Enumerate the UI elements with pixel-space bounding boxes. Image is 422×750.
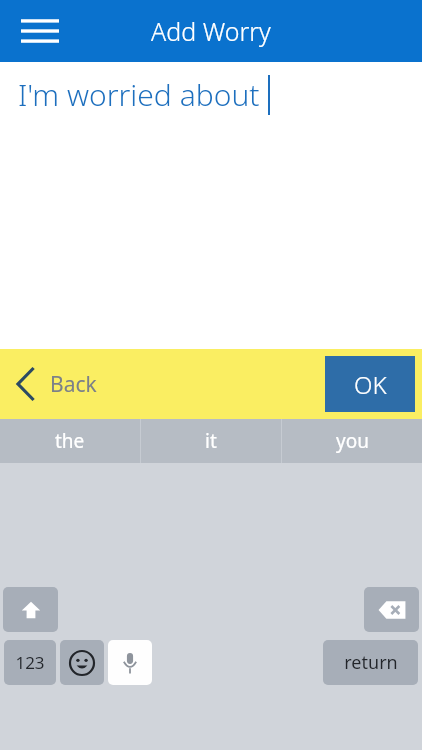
button[interactable]: return (323, 640, 418, 685)
staticText: OK (354, 368, 387, 401)
button[interactable]: the (0, 419, 140, 463)
staticText: you (336, 428, 369, 454)
button[interactable]: Back (16, 349, 97, 419)
button[interactable]: you (282, 419, 422, 463)
button[interactable]: it (141, 419, 281, 463)
button[interactable]: Emoji (60, 640, 104, 685)
staticText: 123 (15, 651, 45, 674)
button[interactable]: Menu (14, 5, 66, 57)
staticText: the (55, 428, 85, 454)
button[interactable]: Voice input (108, 640, 152, 685)
button[interactable]: I'm worried about (0, 62, 422, 349)
staticText: Add Worry (151, 14, 271, 48)
button[interactable]: Shift (3, 587, 58, 632)
button[interactable]: OK (325, 356, 415, 412)
button[interactable]: 123 (4, 640, 56, 685)
staticText: it (205, 428, 217, 454)
button[interactable]: Backspace (364, 587, 419, 632)
staticText: Back (50, 370, 97, 399)
staticText: return (344, 650, 398, 675)
staticText: I'm worried about (18, 74, 268, 115)
